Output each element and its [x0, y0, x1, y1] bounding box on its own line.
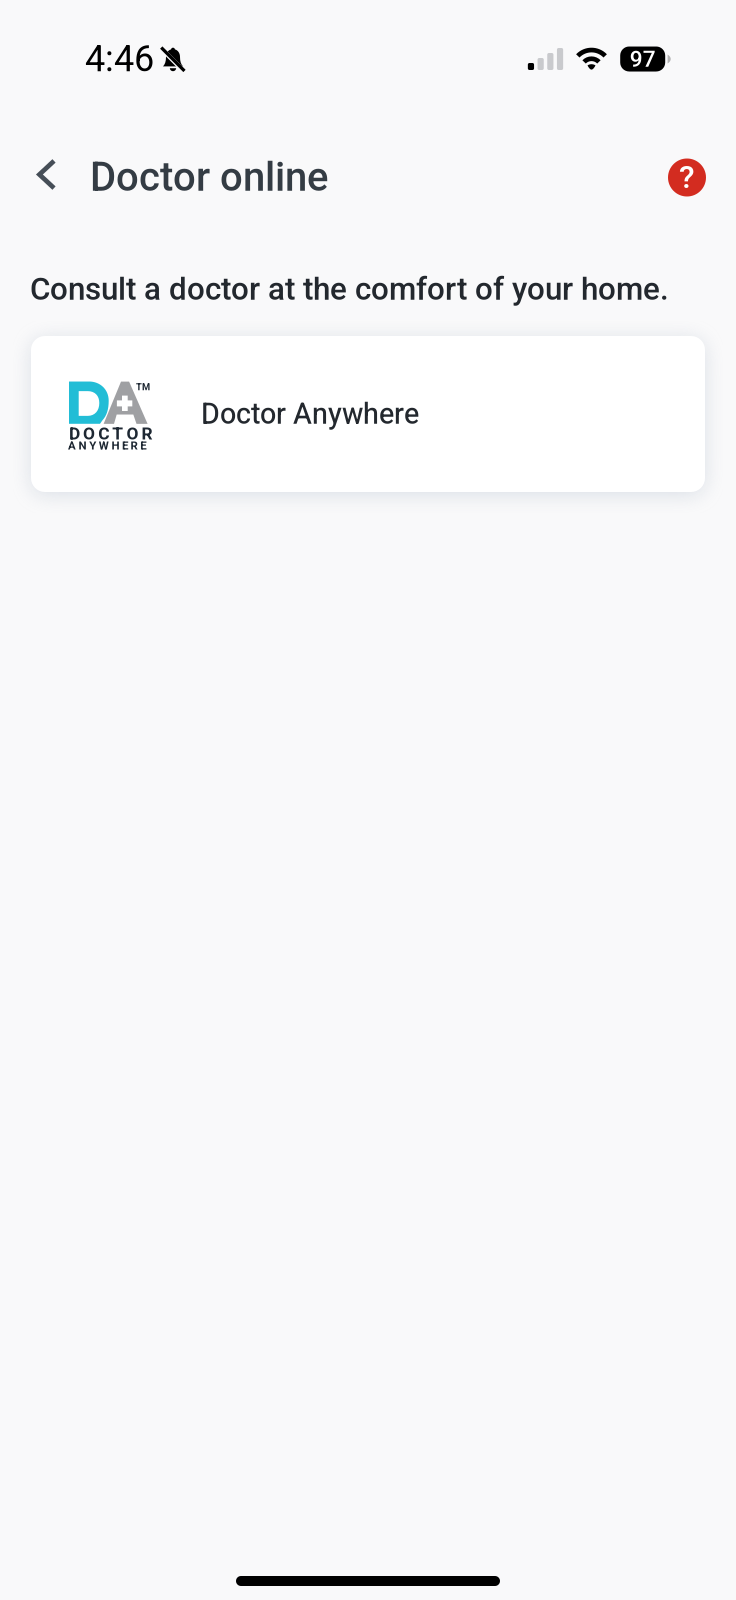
staticText: Consult a doctor at the comfort of your … — [30, 271, 669, 307]
button[interactable]: Doctor online — [90, 149, 334, 205]
staticText: Doctor Anywhere — [201, 397, 419, 431]
staticText: 4:46 — [85, 38, 154, 80]
button[interactable]: Back — [19, 146, 75, 202]
staticText: DOCTOR — [69, 423, 152, 444]
staticText: 97 — [630, 46, 656, 72]
button[interactable]: Help — [659, 149, 715, 205]
button[interactable]: TM — [31, 336, 705, 492]
staticText: TM — [136, 381, 150, 392]
staticText: ANYWHERE — [68, 439, 146, 452]
staticText: ? — [679, 158, 695, 196]
staticText: Doctor online — [90, 154, 328, 200]
